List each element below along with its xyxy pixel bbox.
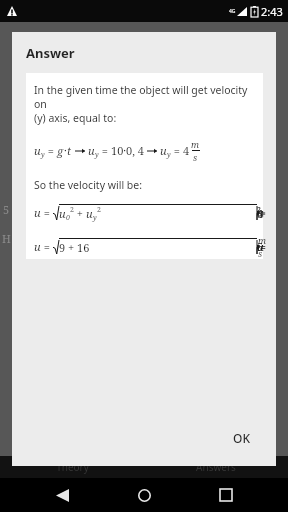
staticText: m — [191, 138, 200, 150]
staticText: 0 — [66, 213, 70, 223]
staticText: 4G — [229, 8, 236, 15]
staticText: 2 — [70, 205, 74, 215]
staticText: y — [41, 150, 45, 160]
staticText: 2:43 — [261, 4, 283, 19]
staticText: s — [193, 151, 198, 163]
staticText: 4 — [183, 143, 190, 158]
staticText: Theory — [56, 460, 89, 474]
staticText: 2 — [97, 205, 101, 215]
staticText: u — [160, 143, 167, 158]
staticText: y — [95, 150, 99, 160]
staticText: y — [93, 213, 97, 223]
staticText: 10·0, 4 — [111, 143, 144, 158]
staticText: In the given time the object will get ve… — [34, 83, 257, 125]
staticText: Answers — [196, 460, 236, 474]
staticText: H — [2, 231, 11, 246]
staticText: u — [34, 143, 41, 158]
staticText: u — [86, 206, 93, 221]
button[interactable]: Home — [124, 478, 164, 512]
staticText: u — [34, 239, 41, 254]
staticText: OK — [233, 430, 250, 446]
staticText: = — [41, 239, 53, 254]
button[interactable]: Recent apps — [206, 478, 246, 512]
staticText: u — [34, 205, 41, 220]
staticText: u — [59, 206, 66, 221]
button[interactable]: Back — [42, 478, 82, 512]
staticText: y — [167, 150, 171, 160]
staticText: = — [99, 143, 111, 158]
staticText: = — [41, 205, 53, 220]
staticText: So the velocity will be: — [34, 178, 143, 192]
staticText: · — [64, 143, 67, 158]
staticText: u — [88, 143, 95, 158]
staticText: + — [74, 206, 86, 221]
button[interactable]: Theory — [0, 456, 144, 478]
staticText: 9 + 16 — [59, 240, 90, 255]
button[interactable]: Answers — [144, 456, 288, 478]
staticText: 5 — [3, 202, 10, 217]
staticText: Answer — [26, 44, 75, 62]
staticText: t — [67, 143, 72, 158]
staticText: = — [171, 143, 183, 158]
staticText: = — [45, 143, 57, 158]
staticText: g — [57, 143, 64, 158]
other: Warning — [6, 5, 18, 17]
button[interactable]: OK — [221, 424, 262, 452]
